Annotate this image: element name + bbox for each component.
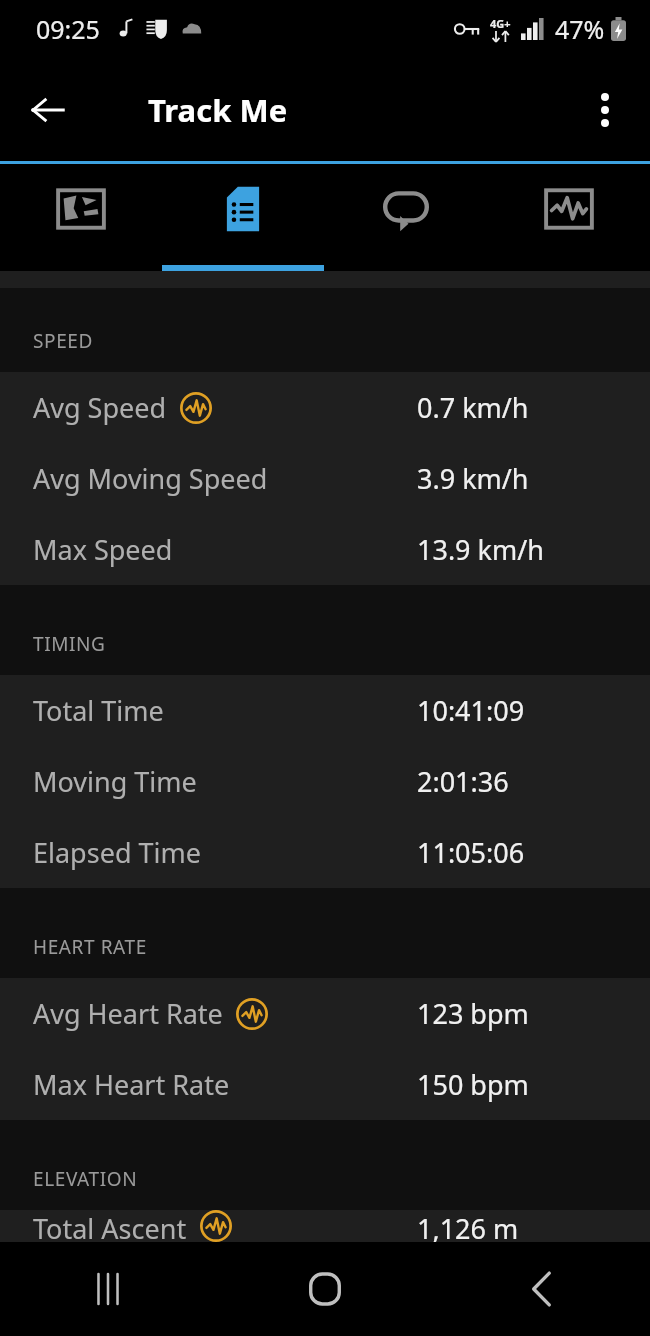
button[interactable]: More options (576, 81, 634, 139)
button[interactable]: Avg Moving Speed (0, 443, 650, 514)
staticText: TIMING (33, 631, 106, 657)
button[interactable]: Home (216, 1242, 433, 1336)
button[interactable]: Chart (487, 164, 650, 271)
staticText: 10:41:09 (417, 692, 525, 729)
staticText: Moving Time (33, 763, 197, 800)
staticText: 2:01:36 (417, 763, 509, 800)
button[interactable]: Back (16, 78, 80, 142)
staticText: ELEVATION (33, 1166, 138, 1192)
button[interactable]: Avg Heart Rate (0, 978, 650, 1049)
button[interactable]: Total Time (0, 675, 650, 746)
staticText: 13.9 km/h (417, 531, 544, 568)
button[interactable]: Stats (162, 164, 324, 271)
staticText: 11:05:06 (417, 834, 525, 871)
button[interactable]: Elapsed Time (0, 817, 650, 888)
staticText: 47% (555, 12, 605, 46)
button[interactable]: Total Ascent (0, 1210, 650, 1242)
staticText: 1,126 m (417, 1210, 519, 1242)
staticText: Elapsed Time (33, 834, 201, 871)
button[interactable]: Back (433, 1242, 650, 1336)
staticText: Total Time (33, 692, 164, 729)
staticText: Track Me (148, 89, 288, 131)
staticText: 123 bpm (417, 995, 529, 1032)
staticText: 0.7 km/h (417, 389, 529, 426)
button[interactable]: Max Speed (0, 514, 650, 585)
button[interactable]: Max Heart Rate (0, 1049, 650, 1120)
staticText: 150 bpm (417, 1066, 529, 1103)
staticText: HEART RATE (33, 934, 147, 960)
staticText: SPEED (33, 328, 93, 354)
staticText: Avg Moving Speed (33, 460, 268, 497)
button[interactable]: Laps (324, 164, 487, 271)
staticText: Total Ascent (33, 1210, 187, 1242)
button[interactable]: Recents (0, 1242, 216, 1336)
staticText: 09:25 (36, 12, 100, 46)
staticText: Max Heart Rate (33, 1066, 230, 1103)
staticText: Avg Speed (33, 389, 167, 426)
staticText: 3.9 km/h (417, 460, 529, 497)
button[interactable]: Moving Time (0, 746, 650, 817)
button[interactable]: Avg Speed (0, 372, 650, 443)
button[interactable]: Map (0, 164, 162, 271)
staticText: Avg Heart Rate (33, 995, 223, 1032)
staticText: 4G+ (490, 16, 511, 31)
staticText: Max Speed (33, 531, 173, 568)
